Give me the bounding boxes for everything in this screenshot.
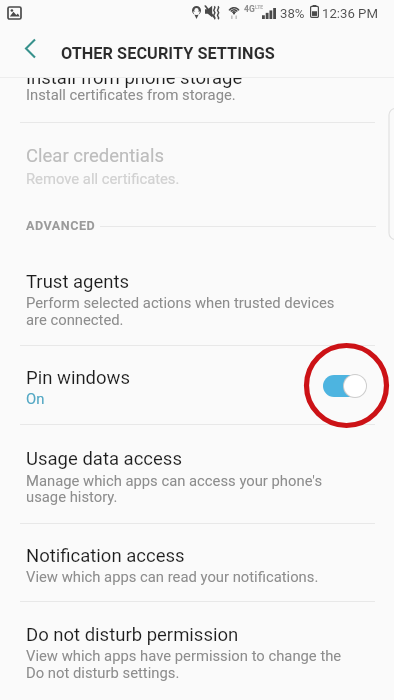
staticText: Clear credentials [26, 145, 164, 167]
staticText: LTE [255, 4, 264, 10]
staticText: 38% [280, 6, 305, 21]
staticText: OTHER SECURITY SETTINGS [61, 44, 275, 63]
button[interactable]: Install from phone storage [0, 40, 394, 122]
button[interactable]: Notification access [0, 523, 394, 601]
staticText: Remove all certificates. [26, 170, 180, 187]
staticText: Do not disturb settings. [26, 664, 180, 681]
staticText: Install from phone storage [26, 67, 243, 89]
staticText: Usage data access [26, 448, 182, 470]
staticText: 4G [244, 4, 255, 14]
button[interactable]: Navigate up [8, 26, 52, 70]
staticText: Do not disturb permission [26, 624, 239, 646]
button[interactable]: Trust agents [0, 248, 394, 345]
staticText: On [26, 390, 45, 407]
staticText: Pin windows [26, 367, 131, 389]
staticText: View which apps have permission to chang… [26, 647, 342, 664]
button[interactable]: Do not disturb permission [0, 601, 394, 691]
button[interactable]: Clear credentials [0, 122, 394, 196]
staticText: are connected. [26, 311, 124, 328]
staticText: ADVANCED [26, 218, 96, 233]
staticText: Install certificates from storage. [26, 86, 236, 103]
staticText: Notification access [26, 545, 185, 567]
staticText: Perform selected actions when trusted de… [26, 294, 335, 311]
staticText: 12:36 PM [322, 6, 378, 21]
staticText: View which apps can read your notificati… [26, 568, 319, 585]
button[interactable]: Pin windows, On [313, 363, 371, 409]
staticText: usage history. [26, 488, 118, 505]
staticText: Manage which apps can access your phone'… [26, 472, 323, 489]
button[interactable]: Usage data access [0, 424, 394, 523]
staticText: Trust agents [26, 271, 130, 293]
